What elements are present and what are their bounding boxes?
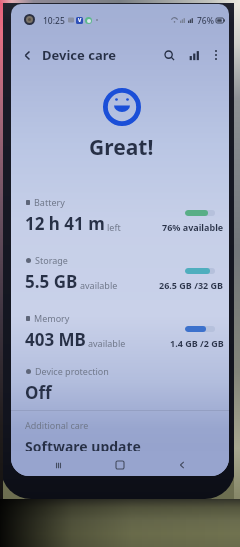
staticText: 76% bbox=[197, 15, 214, 25]
button[interactable]: Home bbox=[105, 451, 135, 476]
staticText: Device protection bbox=[35, 365, 109, 377]
staticText: Additional care bbox=[25, 419, 89, 431]
staticText: Great! bbox=[89, 133, 154, 162]
button[interactable]: More options bbox=[206, 45, 226, 65]
staticText: Software update bbox=[25, 437, 141, 456]
button[interactable]: Navigate up bbox=[15, 43, 39, 67]
button[interactable]: Battery bbox=[11, 196, 229, 248]
button[interactable]: Storage bbox=[11, 254, 229, 306]
staticText: Storage bbox=[35, 254, 68, 266]
button[interactable]: Back bbox=[167, 451, 197, 476]
staticText: available bbox=[88, 337, 126, 349]
staticText: Battery bbox=[34, 196, 65, 208]
button[interactable]: Usage statistics bbox=[183, 44, 205, 66]
button[interactable]: Device protection bbox=[11, 365, 229, 411]
staticText: 1.4 GB /2 GB bbox=[170, 337, 224, 349]
staticText: 5.5 GB bbox=[25, 270, 78, 293]
button[interactable]: Recent apps bbox=[43, 451, 73, 476]
staticText: Device care bbox=[42, 46, 116, 64]
staticText: V bbox=[78, 17, 82, 24]
staticText: available bbox=[80, 279, 118, 291]
staticText: 403 MB bbox=[25, 328, 86, 351]
staticText: Off bbox=[25, 381, 52, 404]
staticText: left bbox=[107, 221, 121, 233]
button[interactable]: Search bbox=[158, 44, 180, 66]
button[interactable]: Memory bbox=[11, 312, 229, 364]
staticText: 26.5 GB /32 GB bbox=[159, 279, 224, 291]
staticText: Memory bbox=[34, 312, 70, 324]
staticText: 10:25 bbox=[43, 15, 65, 25]
staticText: 12 h 41 m bbox=[25, 212, 105, 235]
staticText: 76% available bbox=[162, 221, 224, 233]
